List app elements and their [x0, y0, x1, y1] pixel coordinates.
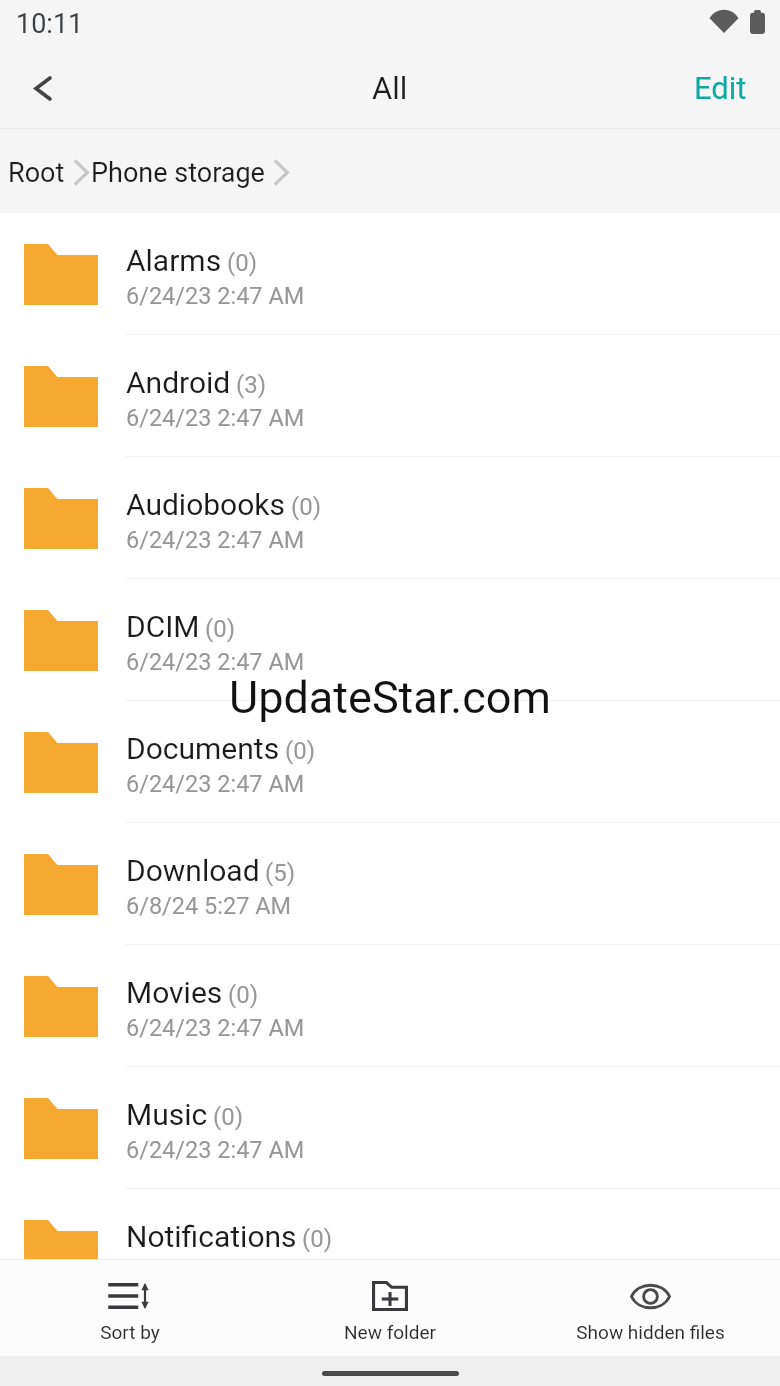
button[interactable]: Audiobooks: [0, 457, 780, 579]
button[interactable]: Edit: [682, 62, 759, 118]
button[interactable]: Android: [0, 335, 780, 457]
staticText: Download: [126, 853, 260, 888]
button[interactable]: Movies: [0, 945, 780, 1067]
staticText: Notifications: [126, 1219, 297, 1254]
button[interactable]: Download: [0, 823, 780, 945]
staticText: (0): [291, 493, 322, 521]
staticText: (5): [265, 859, 296, 887]
staticText: UpdateStar.com: [229, 671, 551, 724]
staticText: (3): [236, 371, 267, 399]
button[interactable]: Sort by: [0, 1260, 260, 1356]
staticText: (0): [227, 249, 258, 277]
button[interactable]: Notifications: [0, 1189, 780, 1259]
button[interactable]: Phone storage: [91, 155, 265, 187]
staticText: 10:11: [16, 8, 84, 40]
staticText: Documents: [126, 731, 280, 766]
staticText: All: [372, 70, 408, 106]
staticText: (0): [205, 615, 236, 643]
staticText: Audiobooks: [126, 487, 286, 522]
button[interactable]: Root: [8, 155, 65, 187]
staticText: Edit: [694, 70, 747, 106]
staticText: 6/8/24 5:27 AM: [126, 892, 292, 920]
button[interactable]: Music: [0, 1067, 780, 1189]
staticText: 6/24/23 2:47 AM: [126, 404, 305, 432]
staticText: 6/24/23 2:47 AM: [126, 526, 305, 554]
button[interactable]: New folder: [260, 1260, 520, 1356]
staticText: (0): [213, 1103, 244, 1131]
staticText: 6/24/23 2:47 AM: [126, 282, 305, 310]
staticText: 6/24/23 2:47 AM: [126, 1014, 305, 1042]
staticText: DCIM: [126, 609, 200, 644]
staticText: Movies: [126, 975, 223, 1010]
staticText: 6/24/23 2:47 AM: [126, 770, 305, 798]
staticText: 6/24/23 2:47 AM: [126, 1136, 305, 1164]
staticText: Sort by: [100, 1321, 160, 1343]
button[interactable]: DCIM: [0, 579, 780, 701]
staticText: Alarms: [126, 243, 222, 278]
staticText: (0): [228, 981, 259, 1009]
button[interactable]: Show hidden files: [520, 1260, 780, 1356]
staticText: (0): [302, 1225, 333, 1253]
staticText: 6/24/23 2:47 AM: [126, 648, 305, 676]
button[interactable]: Documents: [0, 701, 780, 823]
staticText: Android: [126, 365, 231, 400]
staticText: (0): [285, 737, 316, 765]
button[interactable]: Alarms: [0, 213, 780, 335]
staticText: Music: [126, 1097, 208, 1132]
button[interactable]: Back: [12, 59, 74, 121]
staticText: New folder: [344, 1321, 436, 1343]
staticText: Show hidden files: [576, 1321, 725, 1343]
